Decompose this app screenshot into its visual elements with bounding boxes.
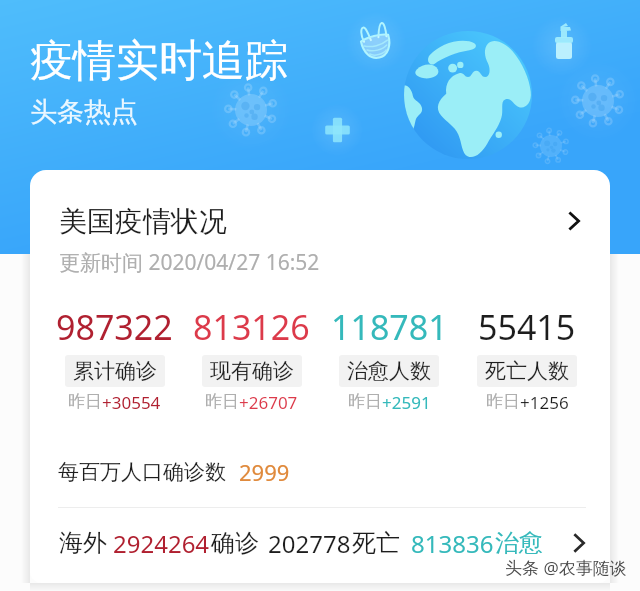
staticText: 美国疫情状况 [59,204,227,239]
staticText: 更新时间 2020/04/27 16:52 [59,248,320,277]
staticText: 现有确诊 [210,358,294,384]
staticText: 55415 [478,304,576,350]
staticText: +1256 [520,391,569,414]
staticText: 海外 [59,528,107,558]
staticText: 昨日 [205,391,239,412]
staticText: 2924264 [113,527,210,560]
staticText: 118781 [331,304,448,350]
staticText: 202778 [268,527,351,560]
button[interactable]: 美国疫情状况 [30,196,610,246]
button[interactable]: 海外 [30,520,610,566]
staticText: +26707 [239,391,298,414]
staticText: 2999 [239,457,290,487]
staticText: 头条 @农事随谈 [505,556,627,579]
staticText: 昨日 [348,391,382,412]
staticText: 813836 [411,527,494,560]
staticText: +2591 [382,391,431,414]
staticText: 死亡 [352,528,400,558]
staticText: 987322 [56,304,173,350]
staticText: 累计确诊 [73,358,157,384]
staticText: +30554 [102,391,161,414]
staticText: 头条热点 [30,95,138,129]
staticText: 疫情实时追踪 [30,34,288,88]
staticText: 昨日 [68,391,102,412]
staticText: 昨日 [486,391,520,412]
staticText: 治愈人数 [347,358,431,384]
staticText: 813126 [193,304,310,350]
staticText: 确诊 [211,528,259,558]
staticText: 治愈 [495,528,543,558]
staticText: 死亡人数 [485,358,569,384]
staticText: 每百万人口确诊数 [58,459,226,485]
